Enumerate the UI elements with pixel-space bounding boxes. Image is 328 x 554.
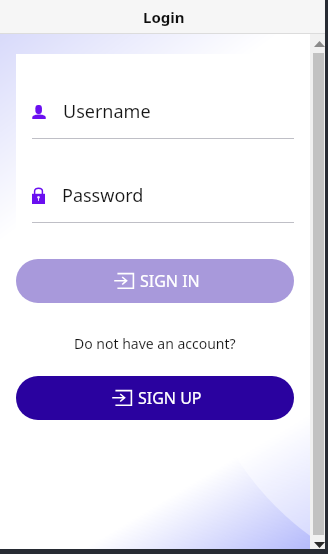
button[interactable]: Scroll up — [310, 34, 328, 53]
staticText: Username — [63, 99, 151, 124]
staticText: Do not have an account? — [74, 334, 236, 353]
staticText: SIGN UP — [138, 387, 202, 409]
staticText: Password — [62, 183, 144, 208]
staticText: Login — [143, 7, 185, 27]
staticText: SIGN IN — [140, 270, 200, 292]
button[interactable]: SIGN IN — [16, 259, 294, 303]
button[interactable]: Scroll down — [310, 535, 328, 554]
button[interactable]: SIGN UP — [16, 376, 294, 420]
